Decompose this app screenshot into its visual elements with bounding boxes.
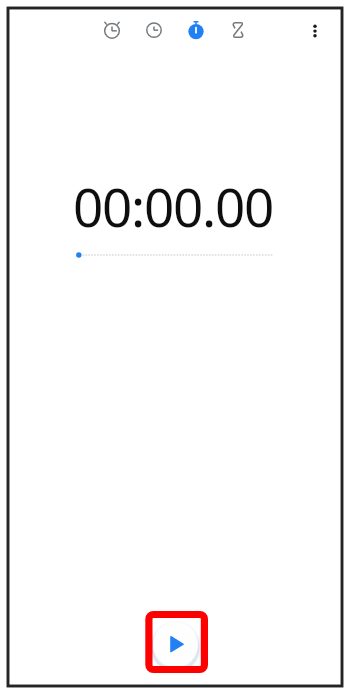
staticText: 00:00.00 [73, 170, 273, 242]
button[interactable]: Alarm [91, 9, 133, 51]
button[interactable]: Timer [217, 9, 259, 51]
button[interactable]: Stopwatch [175, 9, 217, 51]
button[interactable]: Clock [133, 9, 175, 51]
button[interactable]: Start [153, 622, 198, 667]
button[interactable]: More options [297, 13, 333, 49]
